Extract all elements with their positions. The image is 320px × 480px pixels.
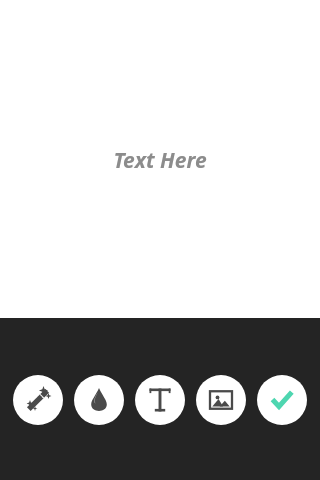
button[interactable]: Add image [196,375,246,425]
button[interactable]: Add text [135,375,185,425]
staticText: Text Here [113,146,207,175]
button[interactable]: Done [257,375,307,425]
button[interactable]: Auto enhance [13,375,63,425]
button[interactable]: Blur [74,375,124,425]
